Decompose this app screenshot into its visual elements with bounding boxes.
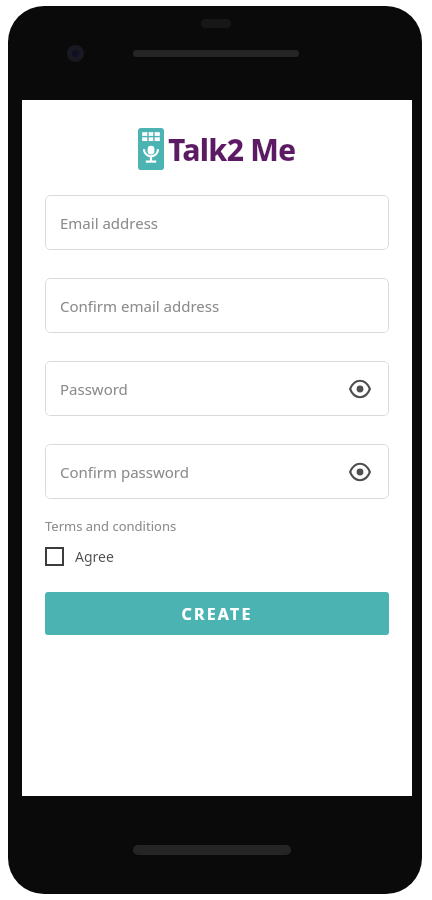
button[interactable]: Password [45,361,389,416]
button[interactable]: Show password [345,457,375,487]
staticText: Terms and conditions [45,517,177,535]
button[interactable]: Agree [45,547,114,566]
button[interactable]: Show password [345,374,375,404]
button[interactable]: CREATE [45,592,389,635]
staticText: Confirm password [60,462,189,482]
button[interactable]: Email address [45,195,389,250]
staticText: Agree [75,547,114,566]
staticText: Password [60,379,128,399]
staticText: Email address [60,213,159,233]
staticText: Talk2 Me [168,129,296,170]
button[interactable]: Confirm password [45,444,389,499]
staticText: Confirm email address [60,296,220,316]
staticText: CREATE [181,603,253,625]
button[interactable]: Confirm email address [45,278,389,333]
